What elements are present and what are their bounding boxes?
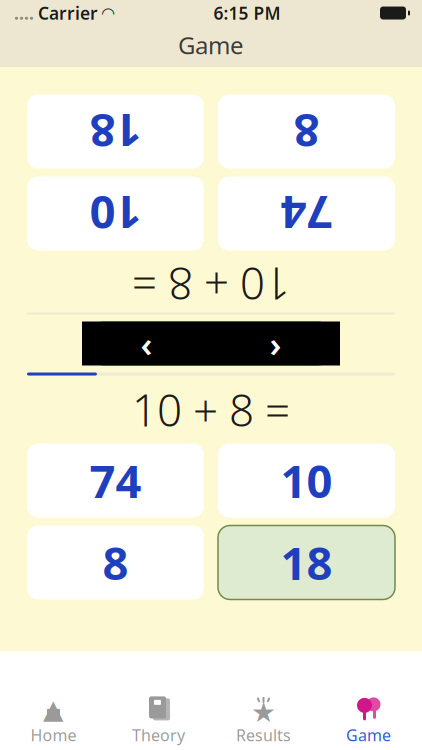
staticText: Results xyxy=(236,724,291,746)
staticText: 74 xyxy=(280,183,332,244)
staticText: › xyxy=(269,320,281,366)
button[interactable]: 10 xyxy=(218,443,395,517)
staticText: ‹ xyxy=(140,320,152,366)
staticText: Carrier xyxy=(38,1,98,24)
staticText: 18 xyxy=(89,101,141,162)
button[interactable]: 10 xyxy=(27,176,204,250)
button[interactable]: 8 xyxy=(218,94,395,168)
staticText: 10 xyxy=(89,183,141,244)
staticText: ◠ xyxy=(102,4,114,22)
button[interactable]: Theory xyxy=(106,695,211,747)
button[interactable]: ▲ xyxy=(1,695,106,747)
button[interactable]: Next xyxy=(211,321,340,365)
staticText: 10 + 8 = xyxy=(132,380,290,439)
staticText: 8 xyxy=(293,101,319,162)
staticText: Game xyxy=(346,724,391,746)
staticText: Game xyxy=(178,29,244,61)
staticText: ▲ xyxy=(43,694,64,724)
staticText: 10 xyxy=(280,450,332,511)
button[interactable]: 8 xyxy=(27,525,204,599)
staticText: 18 xyxy=(280,532,332,593)
button[interactable]: 74 xyxy=(218,176,395,250)
staticText: 8 xyxy=(102,532,128,593)
staticText: ★ xyxy=(251,696,276,728)
button[interactable]: 74 xyxy=(27,443,204,517)
button[interactable]: Game xyxy=(316,695,421,747)
button[interactable]: Previous xyxy=(82,321,211,365)
staticText: 10 + 8 = xyxy=(132,255,290,314)
staticText: Home xyxy=(30,724,76,746)
staticText: 6:15 PM xyxy=(213,1,280,24)
button[interactable]: 18 xyxy=(218,525,395,599)
staticText: Theory xyxy=(132,724,185,746)
button[interactable]: 18 xyxy=(27,94,204,168)
staticText: 74 xyxy=(89,450,141,511)
staticText: .... xyxy=(14,1,34,24)
button[interactable]: ★ xyxy=(211,695,316,747)
